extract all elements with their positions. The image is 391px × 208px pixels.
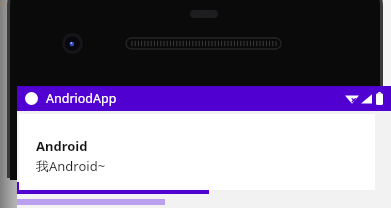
staticText: 我Android~ xyxy=(36,157,106,175)
other: Battery xyxy=(376,92,383,105)
button[interactable]: App icon xyxy=(17,86,391,111)
other: App icon xyxy=(25,92,38,105)
staticText: Android xyxy=(36,137,88,155)
other: Wi-Fi disconnected xyxy=(345,93,359,104)
staticText: AndriodApp xyxy=(46,90,117,107)
staticText: r xyxy=(0,0,5,12)
other: Signal strength xyxy=(361,93,372,104)
button[interactable]: Android xyxy=(19,114,375,190)
